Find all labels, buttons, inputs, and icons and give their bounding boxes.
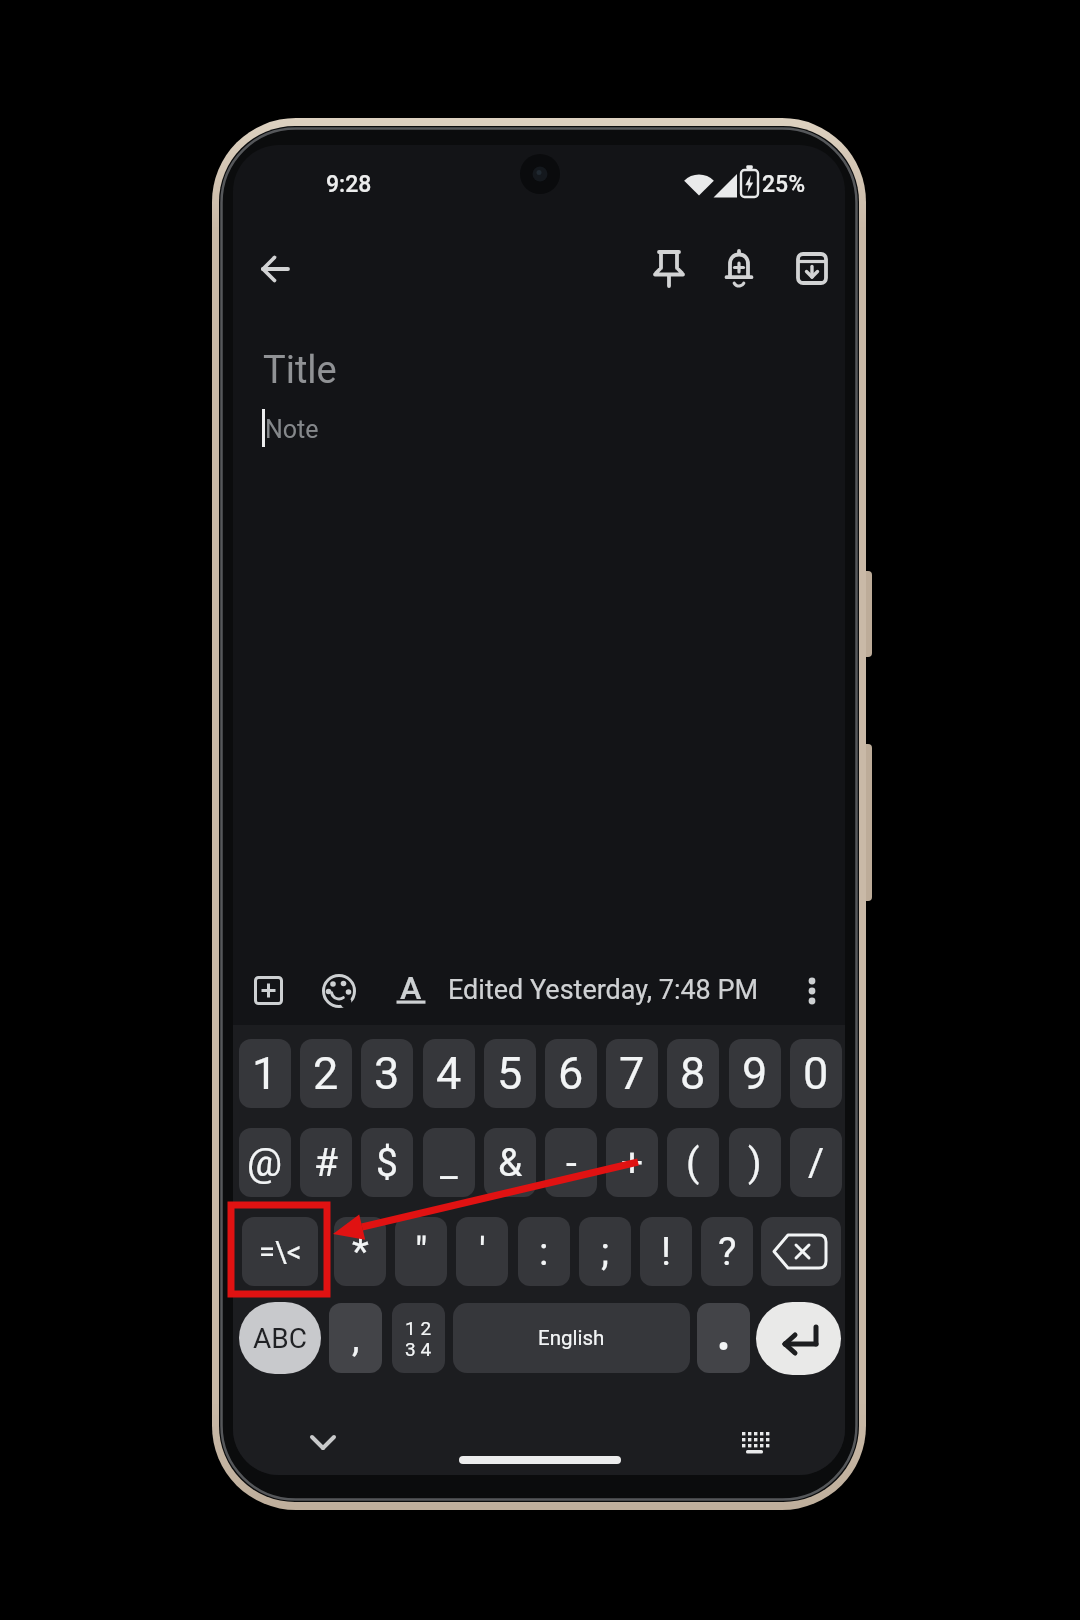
button[interactable]: @: [239, 1128, 291, 1197]
staticText: Edited Yesterday, 7:48 PM: [448, 974, 759, 1006]
button[interactable]: :: [518, 1217, 570, 1286]
staticText: ": [415, 1229, 428, 1275]
staticText: 1: [252, 1047, 278, 1100]
button[interactable]: +: [606, 1128, 658, 1197]
button[interactable]: ': [456, 1217, 508, 1286]
button[interactable]: &: [484, 1128, 536, 1197]
staticText: 0: [803, 1047, 829, 1100]
staticText: !: [661, 1229, 672, 1275]
button[interactable]: 5: [484, 1039, 536, 1108]
staticText: *: [352, 1229, 369, 1275]
staticText: 1 2 3 4: [405, 1317, 432, 1360]
button[interactable]: [245, 350, 805, 394]
button[interactable]: ): [729, 1128, 781, 1197]
button[interactable]: 1: [239, 1039, 291, 1108]
button[interactable]: [643, 244, 691, 292]
button[interactable]: 3: [361, 1039, 413, 1108]
button[interactable]: ,: [329, 1303, 382, 1373]
staticText: 5: [497, 1047, 523, 1100]
staticText: (: [686, 1140, 700, 1186]
button[interactable]: ABC: [239, 1302, 321, 1374]
button[interactable]: [715, 244, 763, 292]
staticText: Title: [263, 348, 337, 393]
button[interactable]: 2: [300, 1039, 352, 1108]
button[interactable]: [761, 1217, 841, 1286]
staticText: ': [479, 1229, 486, 1275]
staticText: @: [247, 1140, 283, 1186]
button[interactable]: 7: [606, 1039, 658, 1108]
button[interactable]: English: [453, 1303, 690, 1373]
staticText: &: [498, 1140, 523, 1186]
staticText: ?: [718, 1229, 737, 1275]
staticText: Note: [265, 415, 319, 444]
button[interactable]: 6: [545, 1039, 597, 1108]
button[interactable]: [245, 406, 805, 450]
staticText: ,: [352, 1316, 360, 1361]
button[interactable]: $: [361, 1128, 413, 1197]
button[interactable]: [244, 966, 292, 1014]
button[interactable]: [730, 1418, 778, 1466]
button[interactable]: [315, 966, 363, 1014]
button[interactable]: =\<: [242, 1217, 318, 1286]
button[interactable]: A: [397, 968, 425, 1008]
button[interactable]: 8: [667, 1039, 719, 1108]
staticText: A: [400, 969, 422, 1007]
staticText: 7: [619, 1047, 645, 1100]
staticText: 9: [742, 1047, 768, 1100]
staticText: =\<: [259, 1235, 302, 1269]
staticText: 8: [680, 1047, 706, 1100]
staticText: ): [748, 1140, 762, 1186]
staticText: 3: [374, 1047, 400, 1100]
button[interactable]: [252, 245, 300, 293]
button[interactable]: ;: [579, 1217, 631, 1286]
staticText: 25%: [762, 171, 806, 198]
button[interactable]: #: [300, 1128, 352, 1197]
staticText: English: [538, 1326, 605, 1350]
button[interactable]: 9: [729, 1039, 781, 1108]
button[interactable]: [756, 1302, 841, 1375]
staticText: 9:28: [326, 171, 372, 198]
button[interactable]: (: [667, 1128, 719, 1197]
staticText: _: [440, 1140, 458, 1186]
staticText: :: [539, 1229, 549, 1275]
button[interactable]: -: [545, 1128, 597, 1197]
staticText: 6: [558, 1047, 584, 1100]
staticText: -: [566, 1140, 577, 1186]
button[interactable]: ": [395, 1217, 447, 1286]
button[interactable]: [299, 1418, 347, 1466]
button[interactable]: [788, 244, 836, 292]
button[interactable]: [697, 1303, 750, 1373]
staticText: ABC: [253, 1322, 307, 1355]
button[interactable]: *: [334, 1217, 386, 1286]
staticText: $: [376, 1140, 398, 1186]
button[interactable]: 0: [790, 1039, 842, 1108]
button[interactable]: _: [423, 1128, 475, 1197]
button[interactable]: /: [790, 1128, 842, 1197]
button[interactable]: [788, 966, 836, 1014]
button[interactable]: !: [640, 1217, 692, 1286]
staticText: +: [621, 1140, 644, 1186]
staticText: 2: [313, 1047, 339, 1100]
staticText: ;: [601, 1229, 610, 1275]
button[interactable]: ?: [701, 1217, 753, 1286]
staticText: 4: [436, 1047, 462, 1100]
button[interactable]: 1 2 3 4: [392, 1303, 445, 1373]
button[interactable]: 4: [423, 1039, 475, 1108]
staticText: /: [808, 1140, 825, 1186]
staticText: #: [314, 1140, 339, 1186]
